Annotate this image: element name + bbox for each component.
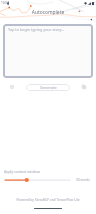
staticText: Generate [40, 85, 57, 90]
staticText: 10:04 [1, 1, 9, 5]
staticText: Powered by KerasNLP and TensorFlow Lite [0, 198, 96, 202]
button[interactable]: Tap to begin typing your story... [3, 24, 93, 78]
staticText: Apply context window [4, 169, 41, 174]
button[interactable]: Settings [6, 81, 18, 93]
staticText: Tap to begin typing your story... [8, 27, 65, 32]
staticText: Autocomplete [0, 9, 96, 16]
button[interactable]: Context window slider [5, 177, 70, 183]
button[interactable]: Copy text [78, 81, 90, 93]
staticText: 20 words [76, 178, 90, 182]
button[interactable]: Generate [26, 84, 70, 91]
